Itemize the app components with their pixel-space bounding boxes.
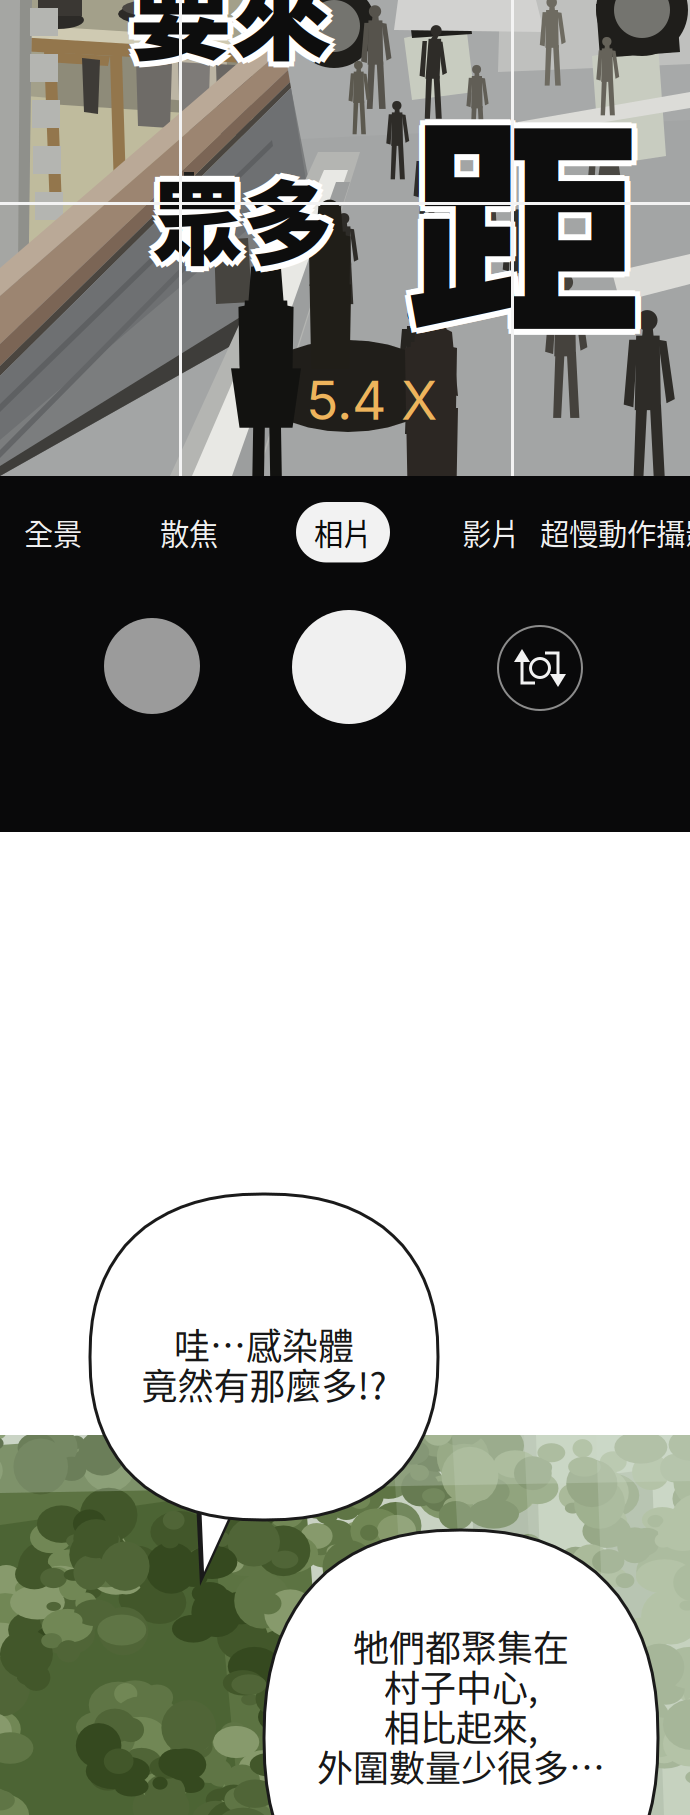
staticText: 要來 bbox=[130, 0, 332, 87]
staticText: 相比起來, bbox=[384, 1700, 538, 1752]
button[interactable]: 超慢動作攝影 bbox=[536, 500, 690, 564]
staticText: 眾多 bbox=[158, 152, 340, 283]
staticText: 影片 bbox=[462, 511, 520, 553]
staticText: 超慢動作攝影 bbox=[540, 511, 690, 553]
staticText: 竟然有那麼多!? bbox=[141, 1358, 386, 1410]
staticText: 距 bbox=[411, 37, 646, 377]
button[interactable]: 全景 bbox=[20, 500, 86, 564]
button[interactable]: 影片 bbox=[458, 500, 524, 564]
button[interactable]: 拍照 bbox=[292, 610, 406, 724]
staticText: 哇…感染體 bbox=[174, 1318, 354, 1370]
staticText: 眾多 bbox=[152, 152, 334, 283]
staticText: 要來 bbox=[135, 0, 337, 86]
staticText: 距 bbox=[406, 48, 641, 388]
staticText: 眾多 bbox=[157, 147, 339, 278]
staticText: 距 bbox=[412, 42, 647, 382]
staticText: 距 bbox=[401, 37, 636, 377]
staticText: 要來 bbox=[136, 0, 338, 81]
staticText: 要來 bbox=[125, 0, 327, 86]
staticText: 眾多 bbox=[147, 157, 329, 288]
staticText: 眾多 bbox=[146, 152, 328, 283]
staticText: 距 bbox=[411, 47, 646, 387]
staticText: 散焦 bbox=[160, 511, 218, 553]
button[interactable]: 散焦 bbox=[156, 500, 222, 564]
staticText: 5.4 X bbox=[306, 368, 437, 432]
staticText: 眾多 bbox=[152, 158, 334, 289]
staticText: 距 bbox=[406, 36, 641, 376]
staticText: 眾多 bbox=[147, 147, 329, 278]
staticText: 牠們都聚集在 bbox=[353, 1620, 569, 1672]
button[interactable]: 相片 bbox=[296, 502, 390, 562]
staticText: 距 bbox=[406, 42, 641, 382]
staticText: 要來 bbox=[130, 0, 332, 81]
staticText: 外圍數量少很多… bbox=[317, 1740, 605, 1792]
staticText: 眾多 bbox=[152, 146, 334, 277]
staticText: 要來 bbox=[135, 0, 337, 76]
button[interactable]: 相片圖庫 bbox=[104, 618, 200, 714]
staticText: 要來 bbox=[125, 0, 327, 76]
button[interactable]: 切換前後鏡頭 bbox=[496, 624, 584, 712]
staticText: 距 bbox=[401, 47, 636, 387]
staticText: 距 bbox=[400, 42, 635, 382]
staticText: 眾多 bbox=[157, 157, 339, 288]
staticText: 相片 bbox=[314, 511, 372, 553]
staticText: 全景 bbox=[24, 511, 82, 553]
staticText: 要來 bbox=[124, 0, 326, 81]
staticText: 要來 bbox=[130, 0, 332, 75]
staticText: 村子中心, bbox=[384, 1660, 538, 1712]
